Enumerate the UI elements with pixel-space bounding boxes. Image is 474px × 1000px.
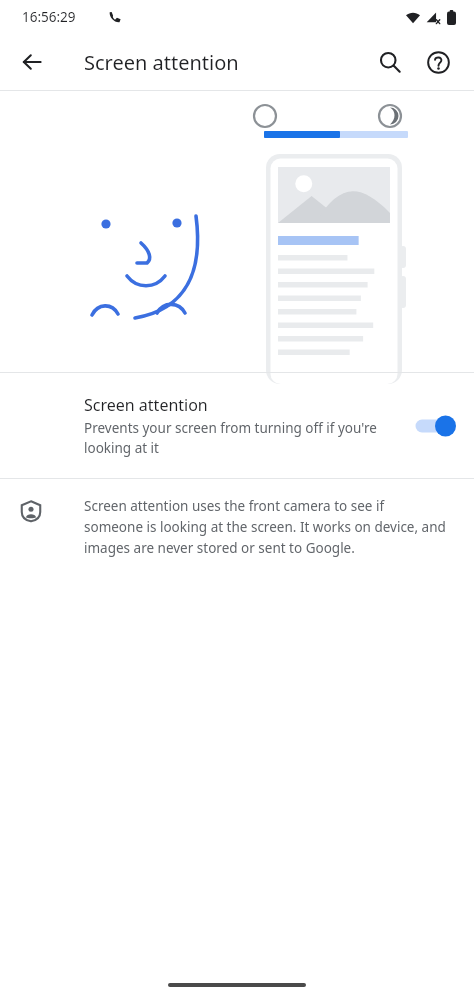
button[interactable]: Search xyxy=(366,38,414,86)
button[interactable]: Help xyxy=(414,38,462,86)
button[interactable]: Screen attention xyxy=(0,373,474,478)
staticText: 16:56:29 xyxy=(22,8,76,26)
staticText: Screen attention uses the front camera t… xyxy=(84,497,446,557)
staticText: Screen attention xyxy=(84,49,239,76)
button[interactable]: Back xyxy=(8,38,56,86)
button[interactable]: Screen attention toggle xyxy=(414,411,454,441)
staticText: Prevents your screen from turning off if… xyxy=(84,419,404,457)
staticText: Screen attention xyxy=(84,394,208,416)
